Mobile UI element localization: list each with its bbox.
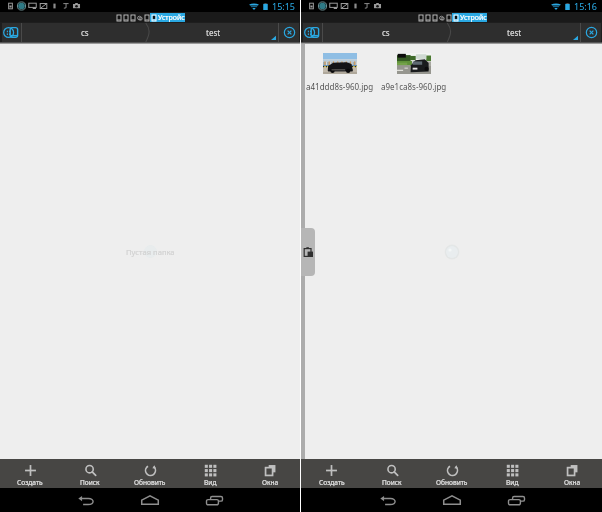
button[interactable]: Tab 5 [445,13,452,22]
button[interactable]: Back [54,488,118,512]
button[interactable]: Вид [482,459,542,488]
button[interactable]: Close [279,23,299,42]
staticText: Вид [204,478,217,487]
button[interactable]: Recents [182,488,246,512]
button[interactable]: Recents [484,488,548,512]
staticText: 15:15 [272,0,296,12]
button[interactable]: Tab 1 [115,13,122,22]
staticText: Вид [506,478,519,487]
button[interactable]: cs [22,23,148,42]
button[interactable]: Окна [542,459,602,488]
button[interactable]: Tab 2 [424,13,431,22]
button[interactable]: Окна [240,459,300,488]
button[interactable]: Устройс [454,13,487,22]
staticText: Пустая папка [126,247,175,257]
button[interactable]: Обновить [120,459,180,488]
button[interactable]: Home [420,488,484,512]
staticText: Создать [17,478,43,487]
button[interactable]: Tab 4 [438,13,445,22]
button[interactable]: Поиск [362,459,422,488]
button[interactable]: cs [323,23,449,42]
button[interactable]: Tab 1 [417,13,424,22]
button[interactable]: a9e1ca8s-960.jpg [377,53,451,92]
staticText: 15:16 [574,0,598,12]
staticText: Обновить [436,478,468,487]
button[interactable]: Tab 5 [143,13,150,22]
staticText: Устройс [158,13,185,22]
button[interactable]: Tab 2 [122,13,129,22]
staticText: Устройс [460,13,487,22]
button[interactable]: Close [581,23,601,42]
staticText: cs [81,27,89,38]
staticText: test [507,27,522,38]
button[interactable]: Создать [0,459,60,488]
staticText: test [206,27,221,38]
button[interactable]: Tab 4 [136,13,143,22]
button[interactable]: Clipboard [301,228,315,276]
staticText: a41ddd8s-960.jpg [306,81,374,92]
staticText: Создать [319,478,345,487]
staticText: a9e1ca8s-960.jpg [381,81,447,92]
staticText: Окна [564,478,581,487]
button[interactable]: a41ddd8s-960.jpg [303,53,377,92]
button[interactable]: test [148,23,278,42]
button[interactable]: Back [356,488,420,512]
button[interactable]: Home [118,488,182,512]
staticText: Поиск [80,478,100,487]
button[interactable]: Поиск [60,459,120,488]
button[interactable]: Tab 3 [431,13,438,22]
button[interactable]: Устройс [152,13,185,22]
button[interactable]: Обновить [422,459,482,488]
button[interactable]: Вид [180,459,240,488]
button[interactable]: Tab 3 [129,13,136,22]
staticText: Обновить [134,478,166,487]
staticText: Поиск [382,478,402,487]
button[interactable]: test [449,23,580,42]
staticText: Окна [262,478,279,487]
button[interactable]: Toggle panels [2,23,21,42]
button[interactable]: Создать [301,459,362,488]
staticText: cs [382,27,390,38]
button[interactable]: Toggle panels [303,23,322,42]
